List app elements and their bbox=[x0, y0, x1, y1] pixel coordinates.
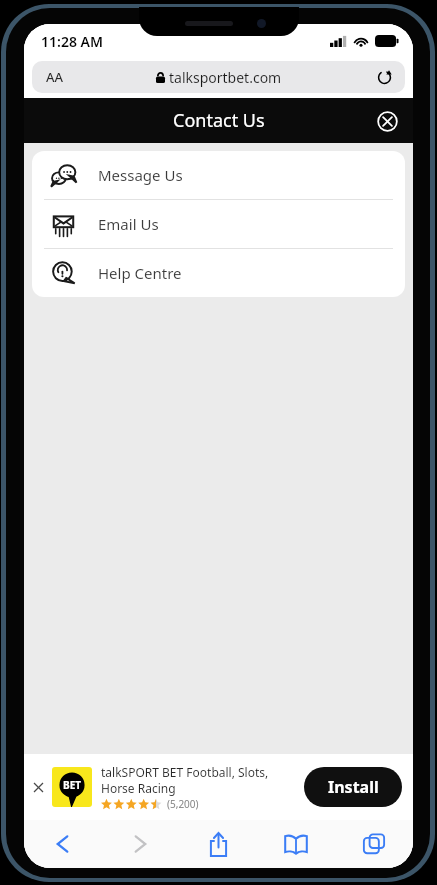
staticText: talksportbet.com bbox=[169, 68, 282, 87]
staticText: Contact Us bbox=[173, 108, 265, 133]
button[interactable]: Install bbox=[304, 767, 402, 807]
staticText: talkSPORT BET Football, Slots, bbox=[101, 764, 269, 780]
button[interactable]: Tabs bbox=[335, 820, 413, 868]
staticText: Message Us bbox=[98, 165, 183, 185]
button[interactable]: Email Us bbox=[32, 200, 405, 248]
staticText: Email Us bbox=[98, 214, 159, 234]
staticText: BET bbox=[63, 778, 82, 792]
staticText: Help Centre bbox=[98, 263, 182, 283]
button[interactable]: Back bbox=[24, 820, 101, 868]
staticText: (5,200) bbox=[167, 797, 199, 811]
button[interactable]: Help Centre bbox=[32, 249, 405, 297]
staticText: Horse Racing bbox=[101, 780, 176, 796]
button[interactable]: Forward bbox=[101, 820, 179, 868]
button[interactable]: Close bbox=[372, 106, 402, 136]
button[interactable]: AA bbox=[32, 61, 405, 93]
button[interactable]: Bookmarks bbox=[257, 820, 335, 868]
button[interactable]: Share bbox=[179, 820, 257, 868]
staticText: 11:28 AM bbox=[41, 32, 103, 51]
button[interactable]: Reload bbox=[373, 66, 395, 88]
staticText: AA bbox=[46, 68, 64, 86]
button[interactable]: Message Us bbox=[32, 151, 405, 199]
staticText: Install bbox=[328, 776, 379, 798]
button[interactable]: Close ad bbox=[24, 754, 52, 820]
